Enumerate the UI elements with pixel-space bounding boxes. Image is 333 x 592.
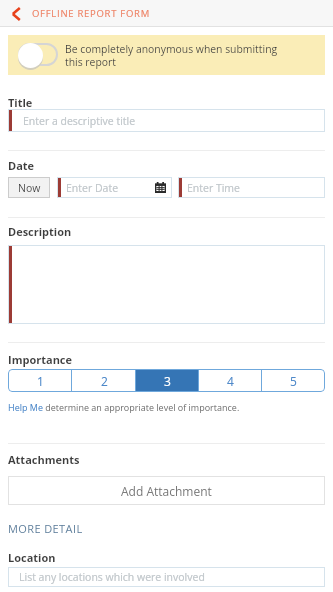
staticText: Enter Time (187, 181, 325, 195)
button[interactable]: 5 (262, 369, 325, 392)
staticText: Now (18, 181, 41, 195)
staticText: 4 (227, 373, 234, 389)
staticText: Be completely anonymous when submitting … (65, 42, 289, 69)
staticText: Enter Date (66, 181, 155, 195)
button[interactable]: Enter Time (178, 177, 325, 198)
button[interactable]: Enter Date (57, 177, 172, 198)
button[interactable]: MORE DETAIL (8, 521, 83, 536)
staticText: 2 (101, 373, 108, 389)
staticText: Importance (8, 352, 73, 367)
staticText: Description (8, 224, 72, 239)
staticText: Add Attachment (121, 483, 212, 499)
staticText: List any locations which were involved (19, 570, 325, 584)
staticText: Enter a descriptive title (23, 114, 325, 128)
staticText: 1 (37, 373, 44, 389)
staticText: Date (8, 158, 35, 173)
button[interactable]: Add Attachment (8, 476, 325, 505)
staticText: 3 (164, 373, 171, 389)
button[interactable]: 2 (72, 369, 136, 392)
button[interactable]: Now (8, 177, 50, 198)
staticText: Title (8, 95, 33, 110)
button[interactable]: Be completely anonymous when submitting … (8, 35, 325, 75)
staticText: Attachments (8, 452, 80, 467)
button[interactable]: Back (0, 0, 32, 27)
staticText: Help Me determine an appropriate level o… (8, 401, 240, 413)
staticText: MORE DETAIL (8, 521, 83, 536)
button[interactable] (8, 245, 325, 324)
staticText: Location (8, 550, 56, 565)
button[interactable]: 4 (199, 369, 262, 392)
staticText: OFFLINE REPORT FORM (32, 7, 150, 20)
button[interactable]: List any locations which were involved (8, 567, 325, 587)
button[interactable]: Enter a descriptive title (8, 109, 325, 132)
staticText: 5 (290, 373, 297, 389)
button[interactable]: 1 (8, 369, 72, 392)
button[interactable]: 3 (136, 369, 199, 392)
